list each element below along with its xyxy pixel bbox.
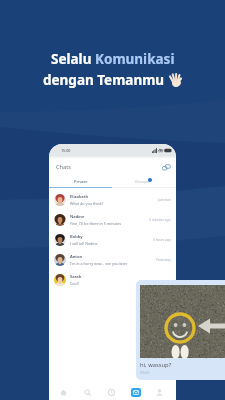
- button[interactable]: Search: [82, 387, 93, 398]
- staticText: I'm in a hurry now... see you later: [70, 261, 128, 266]
- staticText: Anton: [70, 254, 83, 260]
- button[interactable]: Home: [58, 387, 69, 398]
- staticText: Bobby: [70, 234, 83, 240]
- staticText: Chats: [56, 163, 71, 171]
- button[interactable]: Groups: [112, 175, 176, 187]
- staticText: Just now: [158, 198, 171, 202]
- staticText: hi, wassup?: [140, 361, 172, 369]
- button[interactable]: Private: [49, 175, 112, 187]
- button[interactable]: New chat: [161, 162, 172, 173]
- button[interactable]: hi, wassup?: [136, 280, 225, 380]
- button[interactable]: Bobby: [49, 230, 176, 250]
- staticText: 09:45: [140, 370, 150, 375]
- staticText: Selalu: [51, 50, 95, 68]
- staticText: Nadine: [70, 214, 85, 220]
- staticText: I will tell Nadine: [70, 241, 98, 246]
- staticText: Komunikasi: [95, 50, 175, 68]
- staticText: What do you think?: [70, 201, 104, 206]
- button[interactable]: Messages: [130, 387, 141, 398]
- button[interactable]: Sarah: [49, 270, 176, 290]
- staticText: Yesterday: [156, 258, 171, 262]
- button[interactable]: Elizabeth: [49, 190, 176, 210]
- staticText: Private: [74, 179, 88, 184]
- button[interactable]: Activity: [106, 387, 117, 398]
- staticText: 3 minutes ago: [149, 218, 171, 222]
- button[interactable]: Profile: [154, 387, 165, 398]
- staticText: Elizabeth: [70, 194, 89, 200]
- staticText: Fine, I'll be there in 5 minutes: [70, 221, 121, 226]
- staticText: 3 hours ago: [153, 238, 171, 242]
- staticText: Sarah: [70, 274, 82, 280]
- button[interactable]: Anton: [49, 250, 176, 270]
- staticText: 15:00: [61, 148, 71, 153]
- staticText: dengan Temanmu: [43, 71, 168, 89]
- staticText: Groups: [135, 179, 149, 184]
- button[interactable]: Nadine: [49, 210, 176, 230]
- staticText: Cool!: [70, 281, 79, 286]
